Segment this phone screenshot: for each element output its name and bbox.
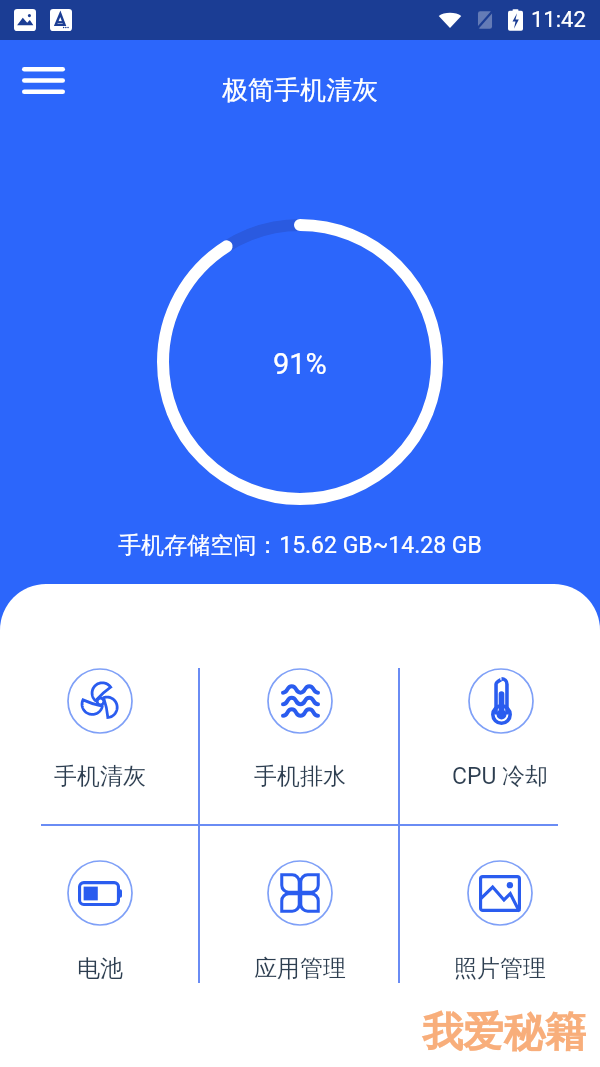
button[interactable]: 手机清灰	[34, 668, 166, 788]
staticText: 手机存储空间：15.62 GB~14.28 GB	[0, 531, 600, 560]
staticText: 极简手机清灰	[0, 74, 600, 107]
button[interactable]: 手机排水	[234, 668, 366, 788]
button[interactable]: CPU 冷却	[434, 668, 566, 788]
button[interactable]: 照片管理	[434, 860, 566, 980]
staticText: 手机清灰	[54, 762, 146, 788]
button[interactable]: Menu	[10, 52, 76, 108]
staticText: 照片管理	[454, 954, 546, 980]
button[interactable]: 电池	[34, 860, 166, 980]
staticText: 91%	[273, 347, 327, 381]
staticText: 电池	[77, 954, 123, 980]
staticText: 11:42	[531, 7, 586, 33]
staticText: 应用管理	[254, 954, 346, 980]
button[interactable]: 应用管理	[234, 860, 366, 980]
staticText: CPU 冷却	[452, 762, 549, 788]
staticText: 手机排水	[254, 762, 346, 788]
staticText: 我爱秘籍	[422, 1007, 586, 1059]
